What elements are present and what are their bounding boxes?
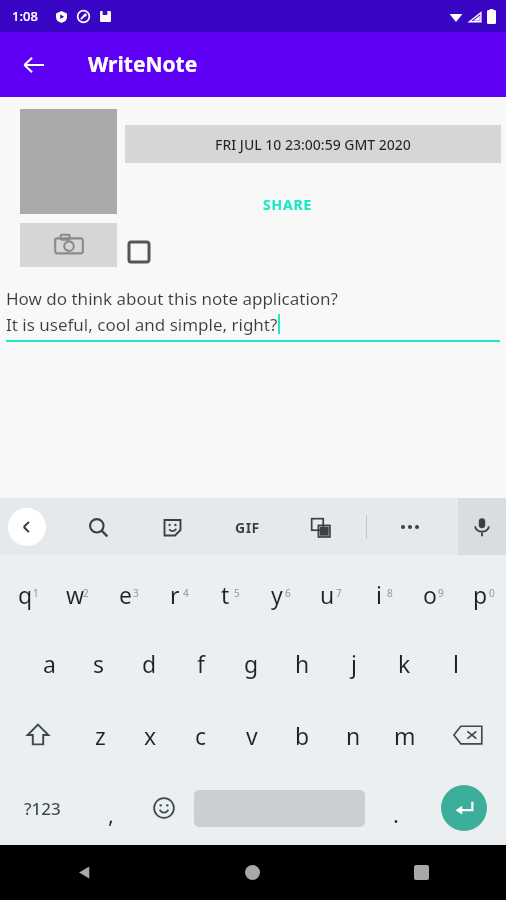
button[interactable]: Backspace — [430, 699, 506, 771]
button[interactable]: FRI JUL 10 23:00:59 GMT 2020 — [125, 125, 501, 163]
staticText: It is useful, cool and simple, right? — [6, 313, 278, 336]
staticText: e — [119, 579, 132, 610]
button[interactable]: Home — [168, 845, 337, 900]
staticText: t — [221, 579, 230, 610]
staticText: g — [244, 648, 259, 679]
button[interactable]: d — [124, 627, 175, 699]
staticText: 4 — [183, 586, 189, 600]
staticText: j — [351, 648, 357, 679]
button[interactable]: b — [277, 699, 328, 771]
button[interactable]: ?123 — [0, 771, 84, 845]
button[interactable]: m — [379, 699, 430, 771]
staticText: 2 — [83, 586, 89, 600]
button[interactable]: n — [328, 699, 379, 771]
staticText: s — [93, 648, 105, 679]
button[interactable]: Stickers — [152, 507, 192, 547]
staticText: 8 — [387, 586, 393, 600]
staticText: 1 — [33, 586, 39, 600]
staticText: r — [170, 579, 180, 610]
button[interactable]: Voice input — [458, 498, 506, 555]
staticText: 5 — [234, 586, 240, 600]
button[interactable]: Translate — [300, 507, 340, 547]
staticText: 9 — [438, 586, 444, 600]
staticText: b — [295, 720, 310, 751]
button[interactable]: a — [24, 627, 74, 699]
button[interactable]: l — [430, 627, 481, 699]
button[interactable]: u — [302, 555, 353, 627]
staticText: q — [18, 579, 33, 610]
staticText: ?123 — [24, 797, 61, 820]
button[interactable]: j — [328, 627, 379, 699]
button[interactable]: s — [74, 627, 124, 699]
staticText: 1:08 — [12, 7, 38, 25]
button[interactable]: Take photo — [20, 223, 117, 267]
button[interactable]: x — [125, 699, 175, 771]
staticText: u — [320, 579, 335, 610]
button[interactable]: o — [404, 555, 455, 627]
staticText: c — [195, 720, 207, 751]
staticText: p — [473, 579, 488, 610]
button[interactable]: z — [75, 699, 125, 771]
staticText: d — [142, 648, 157, 679]
staticText: WriteNote — [88, 50, 198, 79]
staticText: v — [246, 720, 258, 751]
staticText: FRI JUL 10 23:00:59 GMT 2020 — [215, 135, 411, 154]
staticText: 3 — [133, 586, 139, 600]
button[interactable]: Back — [0, 845, 168, 900]
button[interactable]: f — [175, 627, 226, 699]
button[interactable]: r — [150, 555, 200, 627]
button[interactable]: SHARE — [263, 195, 313, 214]
staticText: l — [453, 648, 459, 679]
button[interactable]: k — [379, 627, 430, 699]
button[interactable]: . — [369, 771, 422, 845]
button[interactable]: Space — [190, 771, 369, 845]
button[interactable]: w — [50, 555, 100, 627]
button[interactable]: Close toolbar — [8, 508, 46, 546]
staticText: 7 — [336, 586, 342, 600]
staticText: f — [197, 648, 205, 679]
staticText: SHARE — [263, 195, 313, 214]
button[interactable]: t — [200, 555, 251, 627]
staticText: , — [108, 799, 114, 829]
staticText: k — [398, 648, 411, 679]
staticText: w — [66, 579, 85, 610]
button[interactable]: i — [353, 555, 404, 627]
staticText: z — [95, 720, 106, 751]
button[interactable]: p — [455, 555, 506, 627]
staticText: o — [423, 579, 437, 610]
button[interactable]: y — [251, 555, 302, 627]
button[interactable]: Enter — [422, 771, 506, 845]
button[interactable]: Checkbox — [126, 239, 152, 265]
button[interactable]: g — [226, 627, 277, 699]
staticText: GIF — [235, 518, 260, 537]
button[interactable]: Search — [78, 507, 118, 547]
button[interactable]: Back — [10, 41, 58, 89]
staticText: 6 — [285, 586, 291, 600]
staticText: y — [271, 579, 283, 610]
button[interactable]: v — [226, 699, 277, 771]
staticText: n — [346, 720, 361, 751]
staticText: x — [144, 720, 157, 751]
staticText: . — [393, 799, 399, 829]
staticText: 0 — [489, 586, 495, 600]
staticText: How do think about this note application… — [6, 287, 338, 310]
button[interactable]: q — [0, 555, 50, 627]
button[interactable]: c — [175, 699, 226, 771]
staticText: m — [394, 720, 416, 751]
button[interactable]: Shift — [0, 699, 75, 771]
staticText: i — [376, 579, 382, 610]
button[interactable]: , — [84, 771, 137, 845]
button[interactable]: Emoji — [137, 771, 190, 845]
staticText: h — [295, 648, 310, 679]
button[interactable]: GIF — [225, 505, 269, 549]
button[interactable]: h — [277, 627, 328, 699]
button[interactable]: Recent apps — [337, 845, 506, 900]
button[interactable]: e — [100, 555, 150, 627]
button[interactable]: More options — [390, 507, 430, 547]
staticText: a — [43, 648, 56, 679]
